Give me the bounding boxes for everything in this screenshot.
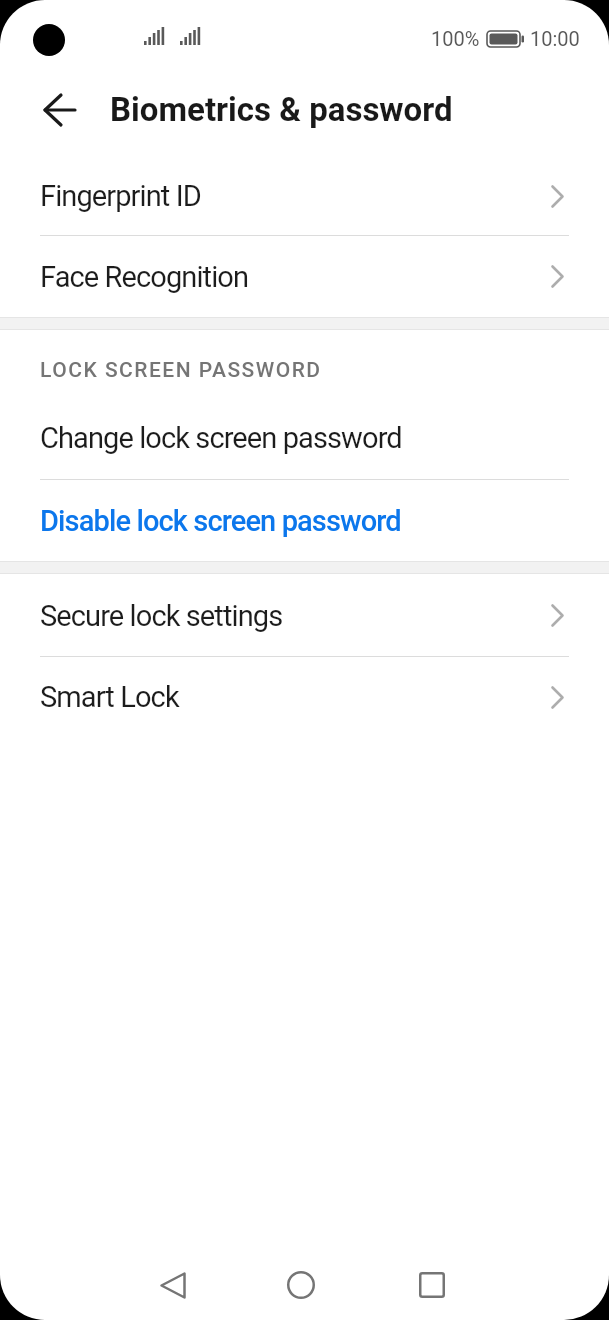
- button[interactable]: Change lock screen password: [0, 396, 609, 480]
- staticText: Smart Lock: [40, 680, 179, 714]
- staticText: Disable lock screen password: [40, 504, 401, 538]
- staticText: Face Recognition: [40, 260, 249, 294]
- button[interactable]: Secure lock settings: [0, 574, 609, 657]
- staticText: Secure lock settings: [40, 599, 283, 633]
- button[interactable]: Face Recognition: [0, 236, 609, 317]
- staticText: 100%: [431, 27, 480, 50]
- button[interactable]: Fingerprint ID: [0, 156, 609, 236]
- staticText: LOCK SCREEN PASSWORD: [40, 358, 322, 383]
- button[interactable]: Smart Lock: [0, 657, 609, 737]
- staticText: 10:00: [530, 27, 580, 50]
- button[interactable]: [160, 1272, 186, 1299]
- staticText: Biometrics & password: [110, 90, 453, 129]
- staticText: Fingerprint ID: [40, 179, 201, 213]
- button[interactable]: [419, 1272, 445, 1298]
- button[interactable]: Disable lock screen password: [0, 480, 609, 561]
- staticText: Change lock screen password: [40, 421, 402, 455]
- button[interactable]: [287, 1271, 315, 1299]
- button[interactable]: [44, 94, 76, 126]
